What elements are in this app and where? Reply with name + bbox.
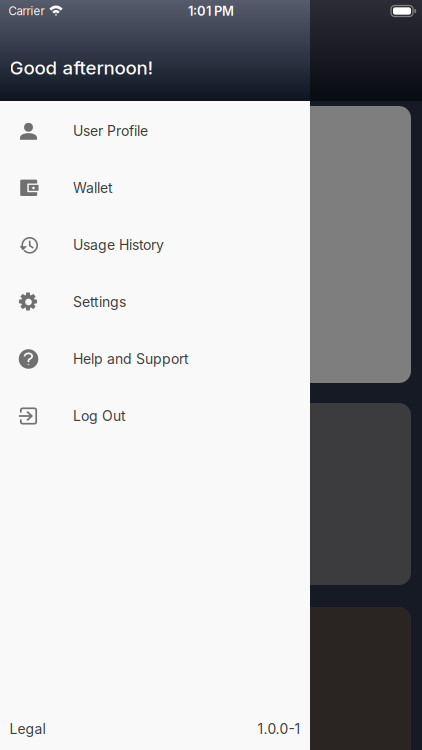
staticText: Good afternoon! <box>9 56 153 79</box>
staticText: Carrier <box>8 4 44 18</box>
staticText: Wallet <box>73 179 113 196</box>
button[interactable]: Help and Support <box>0 330 310 387</box>
staticText: Log Out <box>73 407 126 424</box>
button[interactable]: Settings <box>0 273 310 330</box>
button[interactable]: Log Out <box>0 387 310 444</box>
button[interactable]: User Profile <box>0 102 310 159</box>
button[interactable]: Legal <box>10 715 46 743</box>
staticText: 1.0.0-1 <box>257 721 300 737</box>
staticText: Settings <box>73 293 126 310</box>
staticText: 1:01 PM <box>188 3 234 19</box>
button[interactable]: Wallet <box>0 159 310 216</box>
staticText: Help and Support <box>73 350 189 367</box>
button[interactable]: Usage History <box>0 216 310 273</box>
staticText: Find the closest EF locations. <box>25 353 234 371</box>
staticText: User Profile <box>73 122 148 139</box>
staticText: Usage History <box>73 236 164 253</box>
staticText: Legal <box>10 721 46 737</box>
